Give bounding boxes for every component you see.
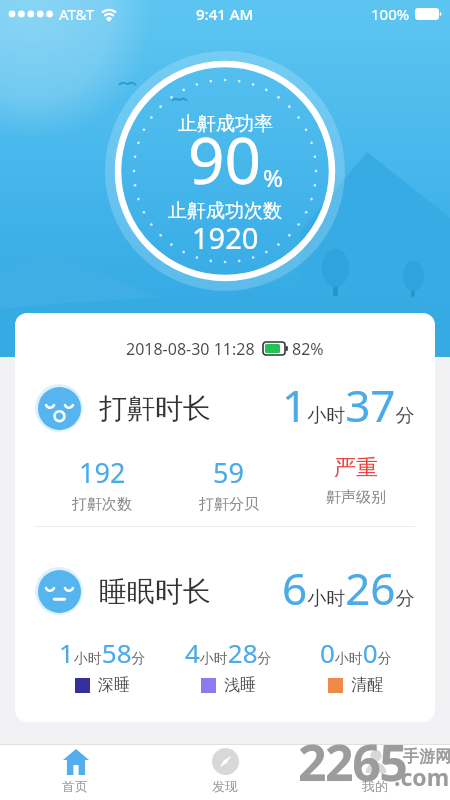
staticText: 1小时58分 [59, 635, 146, 670]
staticText: 1920 [192, 218, 259, 257]
button[interactable]: 1小时58分 [39, 635, 165, 695]
button[interactable]: 59 [165, 454, 292, 514]
staticText: 4小时28分 [185, 635, 272, 670]
staticText: 59 [213, 454, 244, 491]
staticText: 打鼾时长 [99, 391, 211, 426]
staticText: 手游网 [403, 747, 450, 767]
staticText: 严重 [334, 454, 378, 482]
staticText: 浅睡 [224, 675, 256, 695]
staticText: 0小时0分 [320, 635, 392, 670]
staticText: 9:41 AM [196, 4, 254, 24]
staticText: 深睡 [98, 675, 130, 695]
button[interactable]: 严重 [292, 454, 419, 507]
button[interactable]: 发现 [150, 745, 300, 800]
staticText: 82% [292, 338, 324, 358]
button[interactable]: 192 [39, 454, 165, 514]
button[interactable]: 我的 [300, 745, 450, 800]
staticText: 6小时26分 [282, 558, 415, 618]
staticText: AT&T [59, 4, 94, 24]
staticText: 清醒 [351, 675, 383, 695]
staticText: 止鼾成功次数 [168, 199, 282, 223]
staticText: 睡眠时长 [99, 574, 211, 609]
button[interactable]: 睡眠时长 [35, 561, 415, 621]
button[interactable]: 0小时0分 [292, 635, 419, 695]
staticText: 首页 [62, 778, 88, 794]
staticText: 1小时37分 [282, 375, 415, 435]
staticText: .com [394, 761, 450, 792]
staticText: 2265 [298, 728, 407, 796]
staticText: 100% [371, 4, 410, 24]
button[interactable]: 4小时28分 [165, 635, 292, 695]
staticText: 2018-08-30 11:28 [126, 338, 255, 358]
staticText: 192 [79, 454, 126, 491]
staticText: 鼾声级别 [326, 488, 386, 507]
staticText: % [263, 161, 283, 194]
staticText: 发现 [212, 778, 238, 794]
staticText: 止鼾成功率 [178, 112, 273, 136]
button[interactable]: 首页 [0, 745, 150, 800]
staticText: 打鼾次数 [72, 495, 132, 514]
staticText: 打鼾分贝 [199, 495, 259, 514]
staticText: 我的 [362, 778, 388, 794]
button[interactable]: 打鼾时长 [35, 378, 415, 438]
staticText: 90 [188, 116, 262, 203]
